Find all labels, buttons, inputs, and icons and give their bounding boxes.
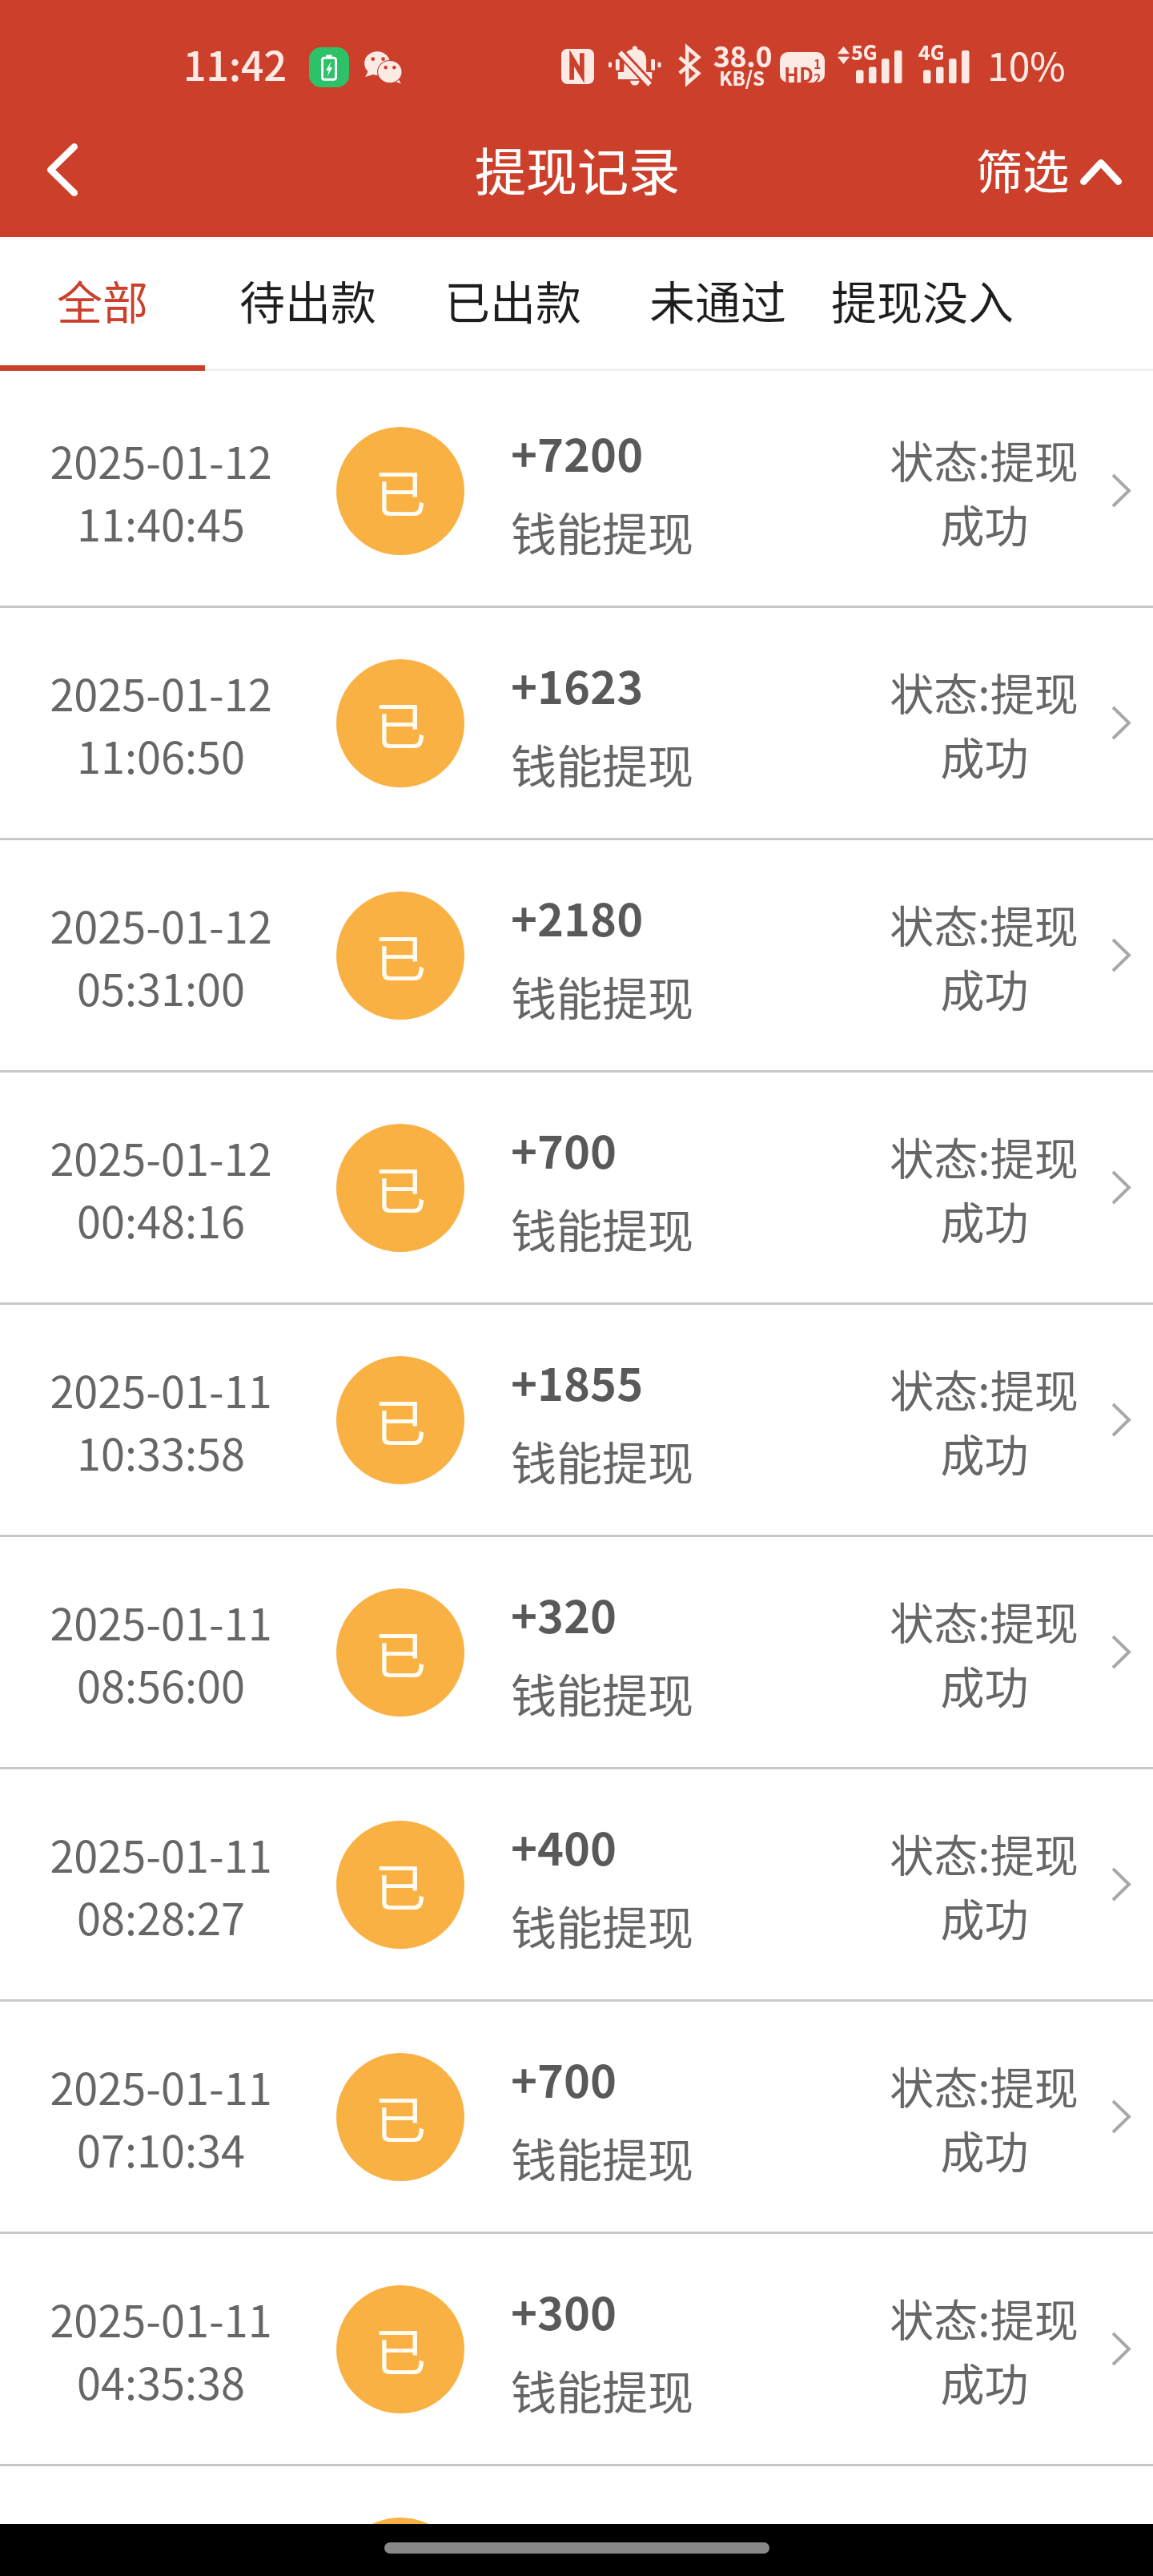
staticText: 07:10:34 bbox=[77, 2117, 245, 2180]
staticText: 2025-01-11 bbox=[50, 2055, 272, 2117]
staticText: 10:33:58 bbox=[77, 1420, 245, 1483]
staticText: 状态:提现 bbox=[890, 1588, 1079, 1652]
staticText: +320 bbox=[511, 1581, 617, 1646]
button[interactable]: 2025-01-11 bbox=[0, 2234, 1153, 2464]
staticText: 成功 bbox=[940, 1885, 1029, 1949]
staticText: 成功 bbox=[940, 491, 1029, 555]
button[interactable]: 2025-01-11 bbox=[0, 1537, 1153, 1767]
staticText: 10% bbox=[987, 36, 1066, 92]
staticText: 成功 bbox=[940, 1188, 1029, 1252]
button[interactable]: 已出款 bbox=[410, 237, 615, 371]
staticText: 状态:提现 bbox=[890, 2053, 1079, 2117]
staticText: +1855 bbox=[511, 1349, 644, 1414]
staticText: 已 bbox=[375, 2312, 426, 2386]
staticText: 2025-01-11 bbox=[50, 2287, 272, 2349]
staticText: +2180 bbox=[511, 884, 644, 949]
staticText: 钱能提现 bbox=[511, 963, 693, 1029]
staticText: 成功 bbox=[940, 2117, 1029, 2181]
staticText: 已出款 bbox=[444, 267, 581, 333]
button[interactable]: 2025-01-11 bbox=[0, 1769, 1153, 1999]
staticText: 2025-01-11 bbox=[50, 1590, 272, 1652]
staticText: 2025-01-12 bbox=[50, 893, 272, 956]
button[interactable]: 2025-01-12 bbox=[0, 608, 1153, 838]
staticText: 11:06:50 bbox=[77, 723, 245, 786]
button[interactable]: 待出款 bbox=[205, 237, 410, 371]
staticText: 2 bbox=[814, 68, 822, 83]
staticText: 08:56:00 bbox=[77, 1652, 245, 1715]
staticText: 38.0 bbox=[713, 34, 773, 75]
staticText: 钱能提现 bbox=[511, 1660, 693, 1726]
staticText: 提现记录 bbox=[475, 131, 680, 206]
button[interactable]: Back bbox=[8, 112, 117, 227]
staticText: +1623 bbox=[511, 652, 644, 717]
button[interactable]: 2025-01-11 bbox=[0, 1305, 1153, 1535]
staticText: 已 bbox=[375, 453, 426, 528]
button[interactable]: 2025-01-11 bbox=[0, 2002, 1153, 2232]
staticText: 待出款 bbox=[239, 267, 376, 333]
button[interactable]: 2025-01-12 bbox=[0, 376, 1153, 606]
staticText: 成功 bbox=[940, 1652, 1029, 1717]
staticText: 1 bbox=[814, 54, 822, 72]
staticText: +700 bbox=[511, 1117, 617, 1181]
staticText: 成功 bbox=[940, 2349, 1029, 2413]
staticText: +300 bbox=[511, 2278, 617, 2343]
staticText: 5G bbox=[851, 37, 878, 66]
staticText: 2025-01-12 bbox=[50, 661, 272, 723]
staticText: 已 bbox=[375, 686, 426, 760]
staticText: 2025-01-11 bbox=[50, 1822, 272, 1885]
staticText: 钱能提现 bbox=[511, 1892, 693, 1958]
button[interactable]: 提现没入 bbox=[820, 237, 1025, 371]
staticText: 成功 bbox=[940, 1420, 1029, 1484]
staticText: 筛选 bbox=[976, 135, 1070, 203]
staticText: KB/S bbox=[719, 63, 765, 91]
staticText: 钱能提现 bbox=[511, 1195, 693, 1262]
staticText: 状态:提现 bbox=[890, 1124, 1079, 1188]
staticText: HD bbox=[784, 59, 814, 83]
staticText: +7200 bbox=[511, 420, 644, 485]
staticText: 已 bbox=[375, 1150, 426, 1225]
button[interactable]: 2025-01-11 bbox=[0, 2466, 1153, 2576]
button[interactable]: 筛选 bbox=[961, 117, 1145, 229]
staticText: 已 bbox=[375, 2079, 426, 2154]
staticText: 状态:提现 bbox=[890, 1356, 1079, 1420]
staticText: 05:31:00 bbox=[77, 956, 245, 1018]
staticText: 状态:提现 bbox=[890, 659, 1079, 723]
staticText: +500 bbox=[511, 2510, 617, 2575]
staticText: 已 bbox=[375, 1615, 426, 1689]
staticText: 2025-01-12 bbox=[50, 429, 272, 491]
staticText: 未通过 bbox=[649, 267, 786, 333]
button[interactable]: 2025-01-12 bbox=[0, 1073, 1153, 1302]
staticText: 00:48:16 bbox=[77, 1188, 245, 1250]
staticText: 2025-01-12 bbox=[50, 1125, 272, 1188]
staticText: 成功 bbox=[940, 723, 1029, 787]
staticText: 11:40:45 bbox=[77, 491, 245, 553]
staticText: 08:28:27 bbox=[77, 1885, 245, 1947]
staticText: 状态:提现 bbox=[890, 892, 1079, 956]
staticText: 全部 bbox=[57, 267, 148, 333]
button[interactable]: 全部 bbox=[0, 237, 205, 371]
staticText: 已 bbox=[375, 1383, 426, 1457]
staticText: 11:42 bbox=[183, 34, 287, 92]
staticText: 状态:提现 bbox=[890, 1821, 1079, 1885]
staticText: 钱能提现 bbox=[511, 2124, 693, 2191]
staticText: 成功 bbox=[940, 956, 1029, 1020]
staticText: 状态:提现 bbox=[890, 2285, 1079, 2349]
staticText: +700 bbox=[511, 2046, 617, 2111]
staticText: 已 bbox=[375, 2544, 426, 2576]
button[interactable]: 未通过 bbox=[615, 237, 820, 371]
staticText: 钱能提现 bbox=[511, 1427, 693, 1494]
staticText: 已 bbox=[375, 918, 426, 992]
staticText: 提现没入 bbox=[831, 267, 1014, 333]
staticText: 2025-01-11 bbox=[50, 1358, 272, 1420]
staticText: 已 bbox=[375, 1847, 426, 1922]
button[interactable]: 2025-01-12 bbox=[0, 840, 1153, 1070]
staticText: 04:35:38 bbox=[77, 2349, 245, 2412]
staticText: 钱能提现 bbox=[511, 498, 693, 565]
staticText: +400 bbox=[511, 1813, 617, 1878]
staticText: 状态:提现 bbox=[890, 427, 1079, 491]
staticText: 钱能提现 bbox=[511, 731, 693, 797]
staticText: 钱能提现 bbox=[511, 2357, 693, 2423]
staticText: 2025-01-11 bbox=[50, 2519, 272, 2576]
staticText: 状态:提现 bbox=[890, 2518, 1079, 2576]
staticText: 4G bbox=[918, 37, 945, 66]
